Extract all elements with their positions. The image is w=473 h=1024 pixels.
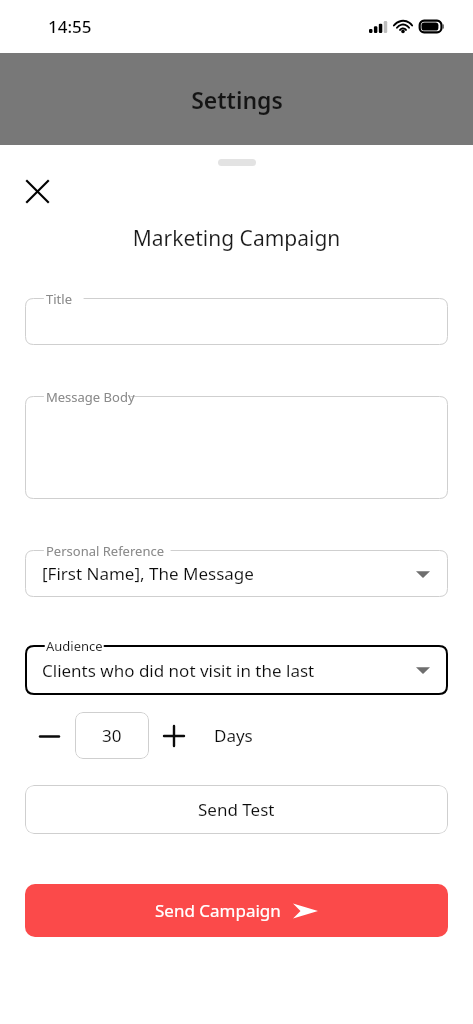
button[interactable]: Increase days bbox=[157, 714, 191, 758]
button[interactable]: Decrease days bbox=[33, 714, 65, 758]
button[interactable]: 30 bbox=[75, 712, 149, 759]
staticText: Marketing Campaign bbox=[0, 224, 473, 253]
button[interactable]: Personal Reference bbox=[25, 550, 448, 597]
button[interactable]: Title bbox=[25, 298, 448, 345]
staticText: Clients who did not visit in the last bbox=[42, 659, 315, 682]
staticText: Send Campaign bbox=[155, 899, 281, 922]
staticText: Audience bbox=[46, 637, 103, 655]
staticText: 14:55 bbox=[48, 15, 92, 38]
staticText: Settings bbox=[191, 84, 283, 115]
staticText: 30 bbox=[102, 724, 122, 747]
button[interactable]: Send Test bbox=[25, 785, 448, 834]
staticText: Message Body bbox=[46, 388, 135, 406]
staticText: Days bbox=[214, 724, 253, 747]
button[interactable]: Audience bbox=[25, 645, 448, 695]
staticText: Personal Reference bbox=[46, 542, 164, 560]
staticText: [First Name], The Message bbox=[42, 562, 254, 585]
staticText: Title bbox=[46, 290, 72, 308]
staticText: Send Test bbox=[198, 798, 275, 821]
button[interactable]: Close bbox=[18, 172, 56, 210]
button[interactable]: Send Campaign bbox=[25, 884, 448, 937]
button[interactable]: Message Body bbox=[25, 396, 448, 499]
